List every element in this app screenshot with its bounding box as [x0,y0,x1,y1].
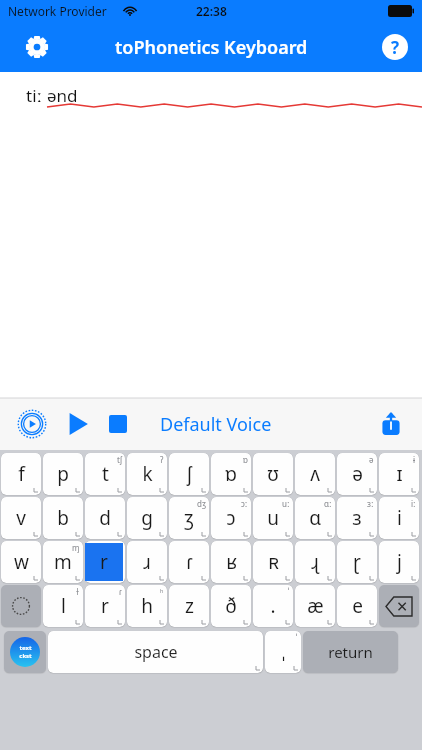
button[interactable] [1,585,41,627]
staticText: l [61,593,66,619]
button[interactable]: i [379,497,419,539]
staticText: 22:38 [196,3,227,19]
button[interactable]: e [337,585,377,627]
button[interactable]: ʃ [169,453,209,495]
button[interactable]: ʒ [169,497,209,539]
button[interactable]: ə [337,453,377,495]
staticText: ˌ [282,641,285,663]
button[interactable]: t [85,453,125,495]
button[interactable]: z [169,585,209,627]
staticText: ɑ [309,505,321,531]
staticText: m [54,549,72,575]
button[interactable]: Stop [102,408,134,440]
button[interactable]: ɒ [211,453,251,495]
staticText: ʌ [310,461,320,487]
button[interactable]: return [303,631,398,673]
button[interactable]: Share [374,407,408,441]
staticText: ʃ [187,461,192,487]
staticText: ʀ [268,549,279,575]
button[interactable]: space [48,631,263,673]
staticText: ɫ [76,586,80,597]
staticText: ɱ [72,542,80,553]
button[interactable]: ɽ [337,541,377,583]
button[interactable]: ɹ [127,541,167,583]
button[interactable]: text ckst [4,631,46,673]
button[interactable]: g [127,497,167,539]
staticText: ɜ [352,505,362,531]
button[interactable]: ʁ [211,541,251,583]
staticText: w [14,549,29,575]
button[interactable]: m [43,541,83,583]
button[interactable]: ɪ [379,453,419,495]
button[interactable]: Default Voice [160,412,272,437]
staticText: ɹ [143,549,151,575]
button[interactable]: ʌ [295,453,335,495]
staticText: text ckst [19,644,32,660]
staticText: k [142,461,153,487]
staticText: p [57,461,69,487]
button[interactable]: j [379,541,419,583]
button[interactable]: k [127,453,167,495]
staticText: . [270,593,276,619]
staticText: ʔ [160,454,164,465]
button[interactable]: l [43,585,83,627]
staticText: ɒ [243,454,248,465]
staticText: ɻ [311,549,319,575]
button[interactable]: ˌ [265,631,301,673]
button[interactable]: h [127,585,167,627]
button[interactable]: b [43,497,83,539]
button[interactable]: p [43,453,83,495]
button[interactable] [379,585,419,627]
button[interactable]: ʀ [253,541,293,583]
button[interactable]: v [1,497,41,539]
staticText: ɽ [353,549,361,575]
staticText: iː [411,498,416,509]
button[interactable]: w [1,541,41,583]
button[interactable]: ð [211,585,251,627]
button[interactable]: æ [295,585,335,627]
staticText: ɜː [367,498,374,509]
staticText: ʊ [267,461,279,487]
staticText: r [100,549,108,575]
button[interactable]: ɜ [337,497,377,539]
staticText: e [352,593,363,619]
staticText: v [16,505,26,531]
button[interactable]: f [1,453,41,495]
button[interactable]: ɻ [295,541,335,583]
button[interactable]: Play [62,408,94,440]
button[interactable]: r [85,541,125,583]
staticText: b [57,505,69,531]
staticText: ʰ [160,586,164,597]
button[interactable]: tiː [0,72,422,398]
staticText: ɒ [225,461,237,487]
button[interactable]: u [253,497,293,539]
button[interactable]: . [253,585,293,627]
staticText: return [328,642,373,662]
staticText: uː [282,498,290,509]
staticText: tiː [26,84,47,107]
staticText: ɾ [119,542,122,553]
staticText: u [267,505,279,531]
staticText: æ [307,593,324,619]
staticText: Default Voice [160,412,272,437]
staticText: ɔː [241,498,248,509]
button[interactable]: r [85,585,125,627]
staticText: j [397,549,402,575]
button[interactable]: Help [382,34,408,60]
staticText: f [18,461,25,487]
button[interactable]: d [85,497,125,539]
button[interactable]: Play slowly [16,408,48,440]
staticText: ɾ [186,549,193,575]
button[interactable]: ʊ [253,453,293,495]
staticText: tʃ [117,454,122,465]
button[interactable]: ɔ [211,497,251,539]
staticText: ɪ [396,461,403,487]
button[interactable]: ɾ [169,541,209,583]
staticText: ə [369,454,374,465]
button[interactable]: Settings [20,30,54,64]
button[interactable]: ɑ [295,497,335,539]
staticText: ˈ [296,632,298,643]
staticText: toPhonetics Keyboard [115,35,308,60]
staticText: g [141,505,153,531]
staticText: ə [352,461,363,487]
